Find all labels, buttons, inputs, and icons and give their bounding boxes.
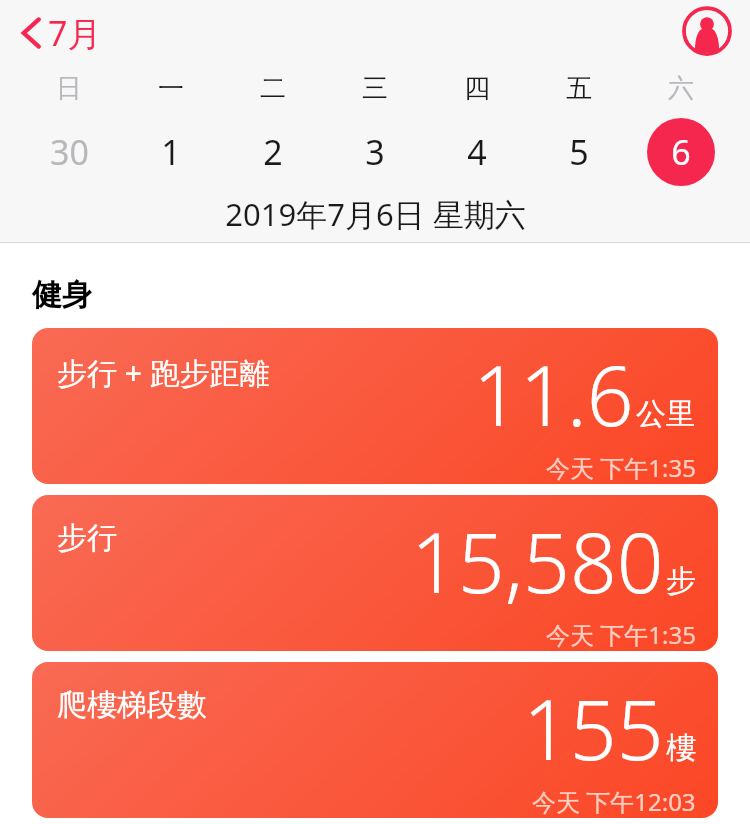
button[interactable]: 2	[222, 118, 324, 186]
staticText: 四	[464, 72, 490, 105]
staticText: 4	[467, 129, 487, 175]
staticText: 一	[158, 72, 184, 105]
button[interactable]: 30	[18, 118, 120, 186]
button[interactable]: 7月	[14, 6, 106, 60]
button[interactable]: 6	[630, 118, 732, 186]
staticText: 11.6	[473, 338, 634, 450]
button[interactable]: 5	[528, 118, 630, 186]
staticText: 六	[668, 72, 694, 105]
button[interactable]: 爬樓梯段數	[32, 662, 718, 818]
staticText: 步行 + 跑步距離	[57, 352, 270, 393]
staticText: 健身	[32, 276, 92, 314]
staticText: 步行	[57, 519, 117, 557]
staticText: 5	[569, 129, 589, 175]
staticText: 三	[362, 72, 388, 105]
button[interactable]: Profile	[682, 6, 732, 56]
staticText: 樓	[666, 729, 696, 767]
staticText: 155	[523, 672, 664, 784]
staticText: 今天 下午1:35	[546, 618, 696, 651]
button[interactable]: 3	[324, 118, 426, 186]
button[interactable]: 步行 + 跑步距離	[32, 328, 718, 484]
button[interactable]: 步行	[32, 495, 718, 651]
staticText: 五	[566, 72, 592, 105]
staticText: 日	[56, 72, 82, 105]
button[interactable]: 1	[120, 118, 222, 186]
staticText: 15,580	[411, 505, 664, 617]
staticText: 爬樓梯段數	[57, 686, 207, 724]
staticText: 30	[50, 129, 89, 175]
staticText: 2	[263, 129, 283, 175]
staticText: 6	[671, 129, 691, 175]
staticText: 今天 下午12:03	[532, 785, 696, 818]
staticText: 1	[161, 129, 181, 175]
staticText: 3	[365, 129, 385, 175]
button[interactable]: 4	[426, 118, 528, 186]
staticText: 7月	[48, 10, 102, 56]
staticText: 步	[666, 562, 696, 600]
staticText: 二	[260, 72, 286, 105]
staticText: 2019年7月6日 星期六	[225, 193, 526, 235]
staticText: 公里	[636, 395, 696, 433]
staticText: 今天 下午1:35	[546, 451, 696, 484]
